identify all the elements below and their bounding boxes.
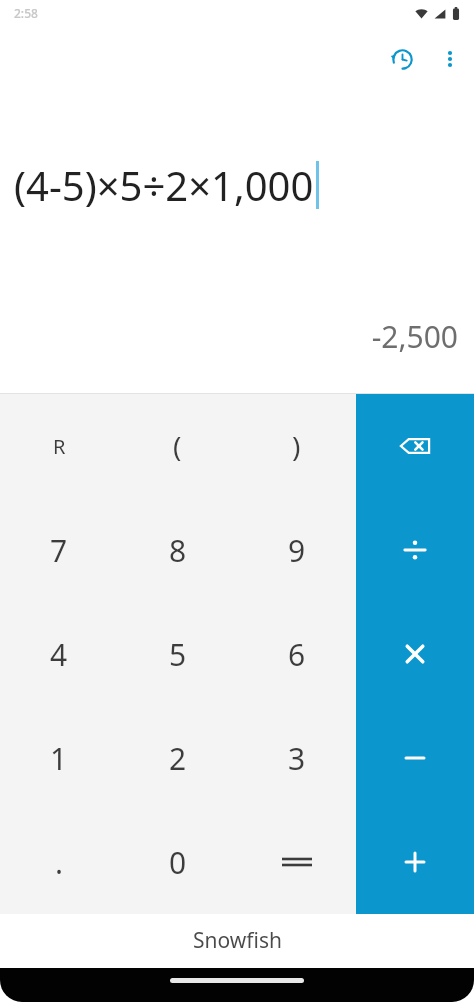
- button[interactable]: More options: [426, 35, 474, 83]
- button[interactable]: (: [118, 394, 237, 498]
- button[interactable]: Divide: [356, 498, 474, 602]
- staticText: 3: [288, 738, 306, 779]
- staticText: 8: [169, 530, 187, 571]
- button[interactable]: Subtract: [356, 706, 474, 810]
- staticText: -2,500: [371, 316, 458, 357]
- staticText: 2:58: [14, 5, 38, 21]
- button[interactable]: 6: [237, 602, 356, 706]
- staticText: ): [292, 427, 301, 465]
- staticText: 7: [50, 530, 68, 571]
- staticText: (4-5)×5÷2×1,000: [14, 158, 314, 212]
- button[interactable]: 1: [0, 706, 118, 810]
- staticText: 1: [50, 738, 68, 779]
- staticText: 4: [50, 634, 68, 675]
- button[interactable]: 3: [237, 706, 356, 810]
- button[interactable]: 8: [118, 498, 237, 602]
- staticText: .: [55, 842, 64, 883]
- button[interactable]: .: [0, 810, 118, 914]
- staticText: R: [53, 433, 66, 460]
- button[interactable]: 0: [118, 810, 237, 914]
- button[interactable]: 5: [118, 602, 237, 706]
- staticText: Snowfish: [193, 926, 282, 955]
- button[interactable]: R: [0, 394, 118, 498]
- button[interactable]: Multiply: [356, 602, 474, 706]
- staticText: 6: [288, 634, 306, 675]
- button[interactable]: Equals: [237, 810, 356, 914]
- button[interactable]: Delete: [356, 394, 474, 498]
- button[interactable]: 2: [118, 706, 237, 810]
- button[interactable]: 7: [0, 498, 118, 602]
- button[interactable]: Add: [356, 810, 474, 914]
- staticText: 9: [288, 530, 306, 571]
- button[interactable]: ): [237, 394, 356, 498]
- button[interactable]: History: [378, 35, 426, 83]
- button[interactable]: 4: [0, 602, 118, 706]
- staticText: 2: [169, 738, 187, 779]
- staticText: 0: [169, 842, 187, 883]
- button[interactable]: 9: [237, 498, 356, 602]
- staticText: 5: [169, 634, 187, 675]
- staticText: (: [173, 427, 182, 465]
